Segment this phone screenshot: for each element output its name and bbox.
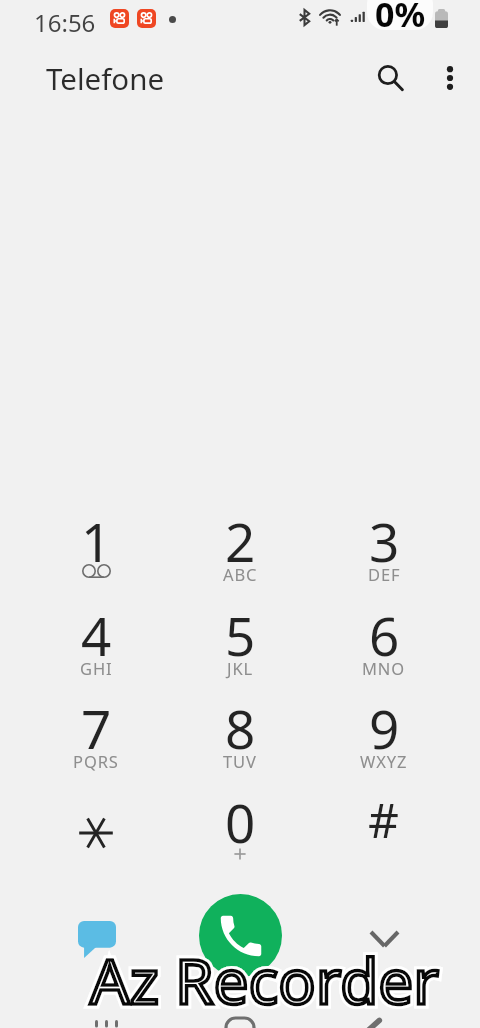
staticText: 8 [225,692,256,764]
button[interactable]: 2 [178,494,302,586]
staticText: 7 [81,692,112,764]
staticText: GHI [80,657,113,679]
staticText: MNO [362,657,406,679]
staticText: Az Recorder [90,938,439,1022]
staticText: 16:56 [34,6,96,39]
staticText: 3 [369,505,400,577]
button[interactable]: Search [366,54,414,102]
button[interactable]: Contacts [184,1000,296,1028]
staticText: 5 [225,599,256,671]
button[interactable]: 1 [34,494,158,586]
staticText: 2 [225,505,256,577]
staticText: 0 [225,786,256,858]
staticText: PQRS [73,750,119,772]
button[interactable]: # [322,775,446,867]
staticText: ABC [223,563,258,585]
staticText: DEF [368,563,401,585]
button[interactable]: 3 [322,494,446,586]
staticText: Telefone [46,58,165,98]
button[interactable]: 5 [178,588,302,680]
staticText: Az Recorder [90,938,439,1022]
staticText: WXYZ [360,750,408,772]
staticText: 0% [375,0,426,30]
button[interactable]: Message [61,903,133,975]
staticText: # [368,787,400,852]
button[interactable]: 4 [34,588,158,680]
button[interactable]: 7 [34,681,158,773]
button[interactable]: 8 [178,681,302,773]
staticText: 6 [369,599,400,671]
staticText: 4 [81,599,112,671]
button[interactable] [34,775,158,867]
staticText: 1 [81,505,112,577]
button[interactable]: More options [428,56,472,100]
button[interactable]: 9 [322,681,446,773]
button[interactable]: Keypad [50,1000,162,1028]
staticText: Az Recorder [90,938,439,1022]
button[interactable]: 0 [178,775,302,867]
button[interactable]: Call [199,894,282,977]
staticText: 9 [369,692,400,764]
button[interactable]: Recents [318,1000,430,1028]
button[interactable]: Hide keypad [348,903,420,975]
staticText: JKL [227,657,254,679]
staticText: TUV [223,750,257,772]
button[interactable]: 6 [322,588,446,680]
